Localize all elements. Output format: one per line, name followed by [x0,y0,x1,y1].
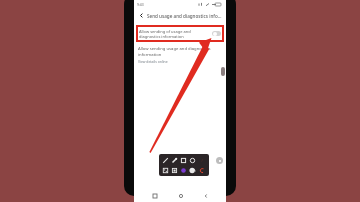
button[interactable]: Blur [161,166,169,174]
staticText: Send usage and diagnostics informa... [147,13,223,19]
button[interactable]: Back [137,11,146,20]
button[interactable]: Fill [188,166,196,174]
button[interactable]: Color [179,166,187,174]
button[interactable]: Close [216,157,223,164]
button[interactable]: Marker [170,156,178,164]
button[interactable]: Circle [188,156,196,164]
button[interactable]: Toggle [212,31,221,36]
button[interactable]: Crop [170,166,178,174]
button[interactable]: Back [200,190,211,201]
button[interactable]: Rectangle [179,156,187,164]
staticText: Allow sending of usage and diagnostics i… [139,29,191,39]
button[interactable]: Allow sending of usage and diagnostics i… [136,25,224,42]
button[interactable]: Undo [197,166,205,174]
button[interactable]: Pen [161,156,169,164]
button[interactable]: Recents [149,190,160,201]
staticText: Allow sending usage and diagnostics info… [138,46,211,57]
staticText: 9:43 [137,2,144,7]
button[interactable]: Home [175,190,186,201]
button[interactable]: View details online [138,59,168,64]
